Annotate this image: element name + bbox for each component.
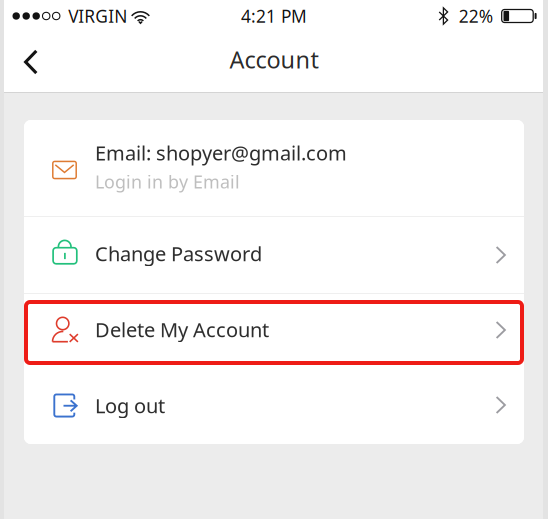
- staticText: Change Password: [95, 240, 262, 267]
- staticText: Login in by Email: [95, 169, 240, 194]
- staticText: 4:21 PM: [241, 4, 307, 28]
- staticText: Delete My Account: [95, 316, 269, 343]
- staticText: VIRGIN: [68, 4, 127, 28]
- staticText: 22%: [459, 4, 493, 28]
- staticText: Email: shopyer@gmail.com: [95, 139, 347, 166]
- button[interactable]: Back: [8, 32, 54, 92]
- button[interactable]: Change Password: [24, 217, 524, 293]
- staticText: Log out: [95, 392, 165, 419]
- staticText: Account: [229, 43, 318, 75]
- button[interactable]: Delete My Account: [24, 294, 524, 366]
- button[interactable]: Log out: [24, 366, 524, 444]
